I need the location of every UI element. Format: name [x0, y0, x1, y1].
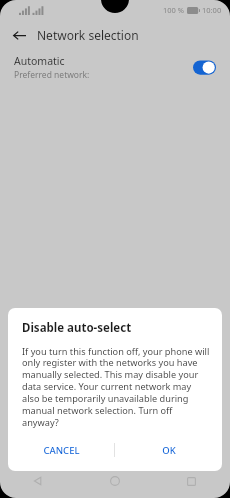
staticText: Network selection — [37, 27, 139, 43]
staticText: Preferred network: — [14, 69, 90, 81]
button[interactable]: Automatic network selection toggle — [193, 60, 216, 75]
staticText: 100 % — [163, 5, 185, 15]
button[interactable]: Back — [0, 464, 76, 498]
button[interactable]: Back — [8, 24, 30, 46]
staticText: Automatic — [14, 54, 65, 68]
button[interactable]: Automatic — [0, 50, 230, 84]
staticText: If you turn this function off, your phon… — [22, 345, 210, 429]
staticText: OK — [162, 444, 176, 457]
button[interactable]: CANCEL — [8, 439, 114, 461]
button[interactable]: Recent apps — [153, 464, 230, 498]
staticText: Disable auto-select — [22, 320, 132, 336]
staticText: 10:00 — [202, 5, 222, 15]
button[interactable]: OK — [115, 439, 222, 461]
staticText: CANCEL — [43, 444, 80, 457]
button[interactable]: Home — [76, 464, 153, 498]
